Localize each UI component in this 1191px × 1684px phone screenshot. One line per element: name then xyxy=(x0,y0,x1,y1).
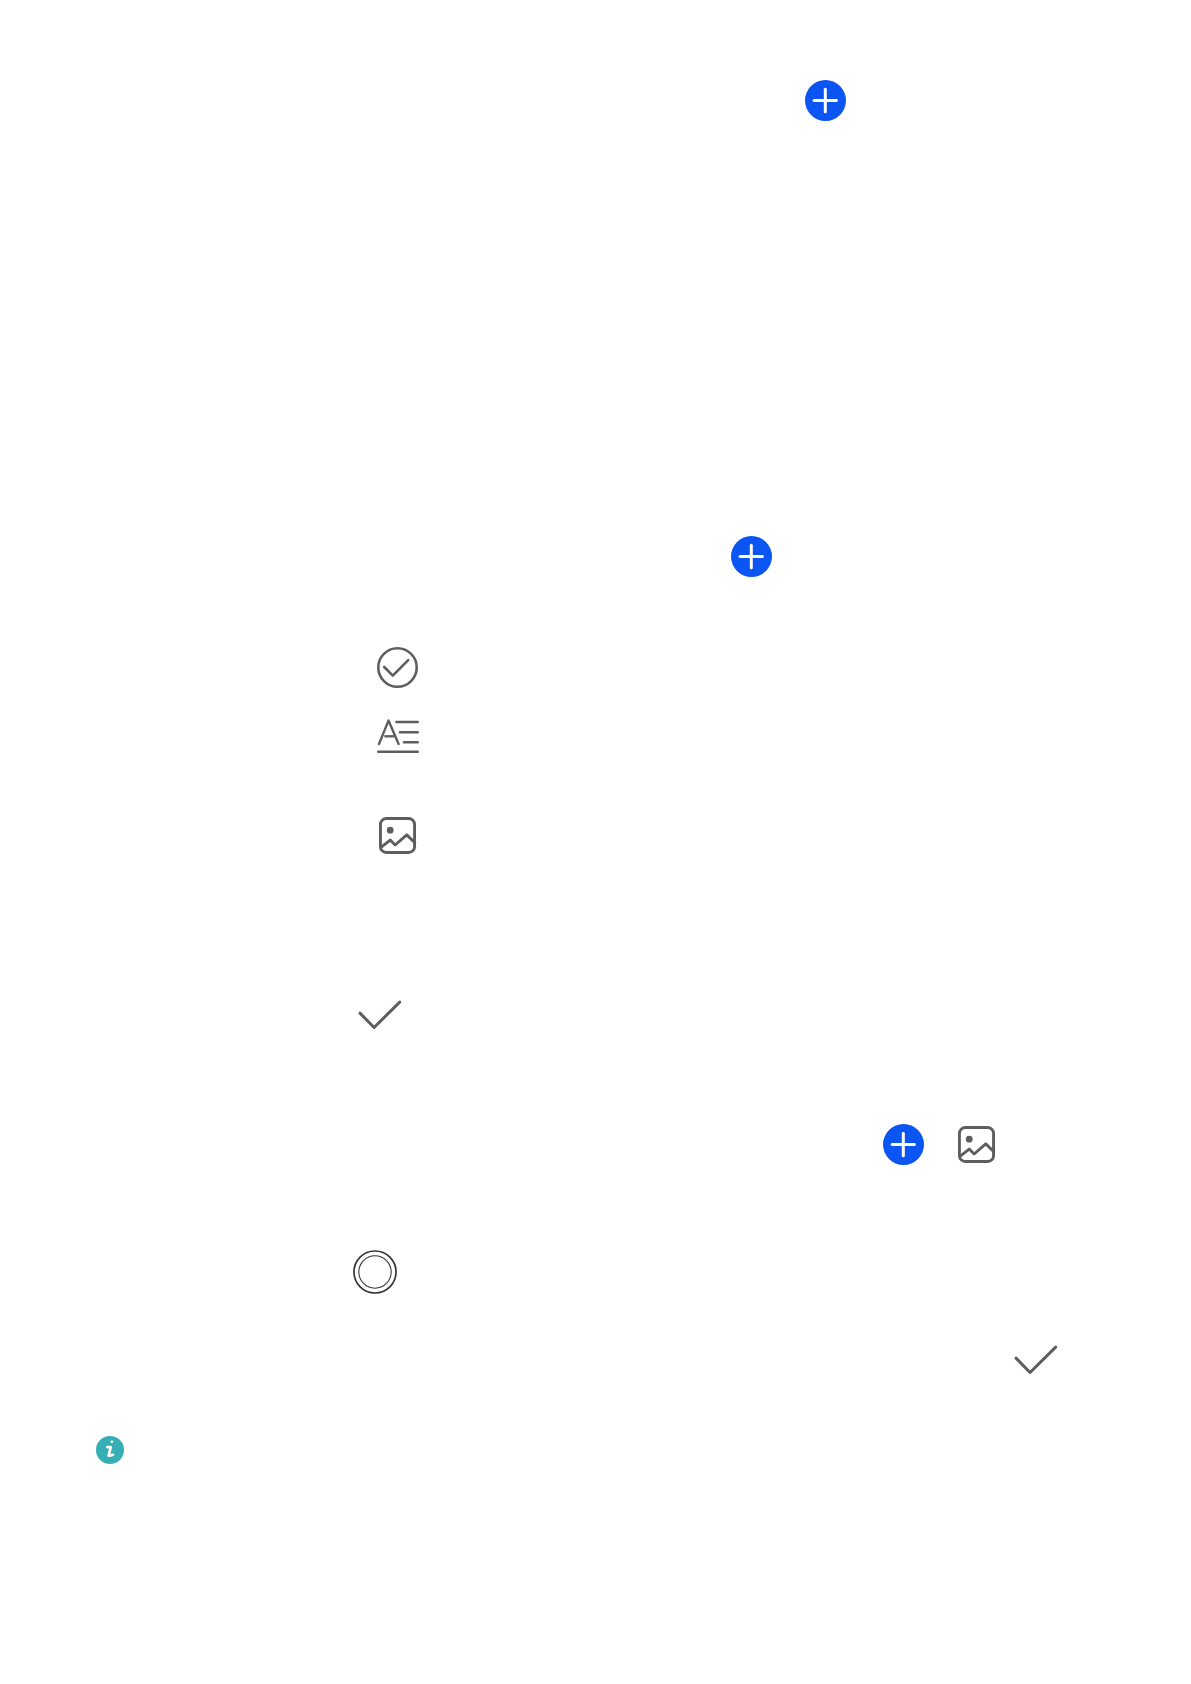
button[interactable]: Photo xyxy=(958,1126,995,1163)
button[interactable]: Photo xyxy=(379,817,416,854)
button[interactable]: Add xyxy=(883,1124,924,1165)
button[interactable]: Done xyxy=(1013,1343,1057,1387)
button[interactable]: Add xyxy=(731,536,772,577)
button[interactable]: Text formatting xyxy=(377,719,419,753)
button[interactable]: Done xyxy=(357,998,401,1042)
button[interactable]: Completed xyxy=(377,647,418,688)
button[interactable]: Information xyxy=(96,1436,124,1464)
button[interactable]: Add xyxy=(805,80,846,121)
button[interactable]: Select xyxy=(353,1250,397,1294)
